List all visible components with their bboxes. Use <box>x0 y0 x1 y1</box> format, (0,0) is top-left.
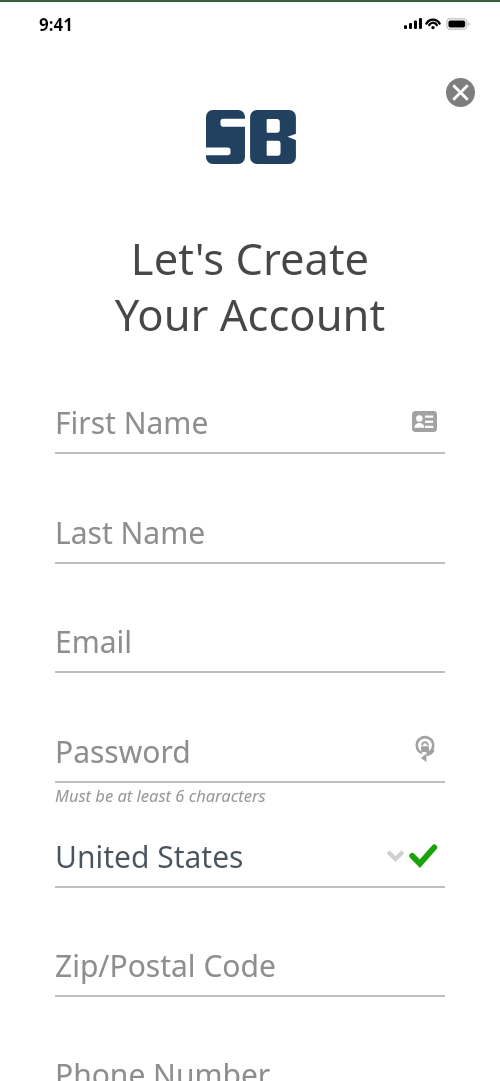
staticText: Last Name <box>55 512 206 553</box>
staticText: Zip/Postal Code <box>55 945 276 986</box>
staticText: United States <box>55 836 244 877</box>
button[interactable]: Zip/Postal Code <box>55 949 445 995</box>
staticText: Let's Create Your Account <box>0 228 500 344</box>
staticText: Must be at least 6 characters <box>55 784 266 806</box>
button[interactable]: Email <box>55 625 445 671</box>
staticText: 9:41 <box>39 13 73 36</box>
button[interactable]: Last Name <box>55 516 445 562</box>
button[interactable]: Password <box>55 735 445 781</box>
button[interactable]: United States <box>55 840 445 886</box>
button[interactable]: Close <box>446 78 475 107</box>
staticText: First Name <box>55 402 209 443</box>
button[interactable]: First Name <box>55 406 445 452</box>
staticText: Email <box>55 621 133 662</box>
staticText: Password <box>55 731 191 772</box>
button[interactable]: Phone Number <box>55 1058 445 1081</box>
staticText: Phone Number <box>55 1054 271 1081</box>
